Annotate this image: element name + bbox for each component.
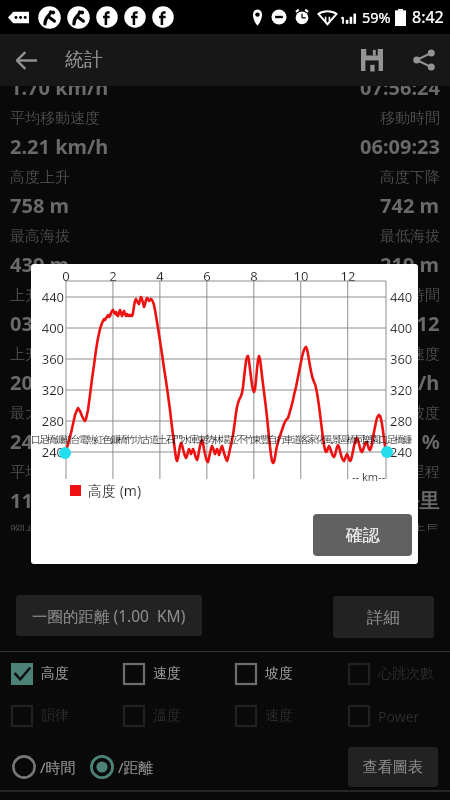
staticText: 03:14:18 — [10, 310, 90, 337]
staticText: 總里程 — [395, 463, 440, 482]
staticText: 240 — [390, 443, 418, 461]
staticText: 最高海拔 — [10, 227, 70, 246]
staticText: 移動時間 — [380, 109, 440, 128]
staticText: 一圈的距離 (1.00 KM) — [32, 605, 186, 626]
staticText: 13.5 公里 — [354, 487, 440, 514]
staticText: 高度 (m) — [88, 481, 142, 500]
staticText: 440 — [390, 288, 418, 306]
staticText: 219 m — [380, 251, 440, 278]
staticText: 204 m/h — [10, 369, 91, 396]
staticText: 06:09:23 — [360, 133, 440, 160]
staticText: -- km-- — [352, 469, 386, 484]
staticText: 1.70 km/h — [10, 86, 109, 101]
staticText: 8 — [243, 267, 265, 285]
staticText: 下降速度 — [380, 345, 440, 364]
staticText: 6 — [196, 267, 218, 285]
staticText: 平均坡度 — [380, 404, 440, 423]
button[interactable]: 高度 — [10, 661, 122, 687]
staticText: 溫度 — [153, 707, 181, 725]
staticText: 口足橋鐮前台電熱紅色鐮橋竹坑古道土石門水庫東勢林場立不竹東豐自行車道客家化風景區… — [31, 433, 418, 446]
staticText: 統計 — [65, 48, 103, 72]
staticText: 詳細 — [367, 607, 400, 628]
button[interactable]: /距離 — [88, 748, 154, 786]
staticText: 320 — [36, 381, 64, 399]
staticText: 320 — [390, 381, 418, 399]
staticText: 236 m/h — [359, 369, 440, 396]
staticText: 439 m — [10, 251, 70, 278]
staticText: 上升速度 — [10, 345, 70, 364]
staticText: 2 — [102, 267, 124, 285]
staticText: 心跳次數 — [378, 665, 434, 683]
staticText: 07:56:24 — [360, 86, 440, 101]
staticText: 400 — [390, 319, 418, 337]
staticText: 上升時間 — [10, 286, 70, 305]
staticText: 280 — [390, 412, 418, 430]
staticText: 平均移動速度 — [10, 109, 100, 128]
staticText: Power — [378, 707, 420, 726]
button[interactable]: Power — [347, 703, 450, 729]
staticText: 腳步數 — [10, 522, 55, 531]
staticText: /距離 — [118, 757, 154, 777]
button[interactable]: 詳細 — [333, 596, 434, 638]
staticText: 0 — [55, 267, 77, 285]
staticText: 坡度 — [265, 665, 293, 683]
staticText: 10 — [290, 267, 312, 285]
button[interactable]: Save — [346, 34, 398, 86]
staticText: 6 % — [405, 428, 440, 455]
staticText: 高度上升 — [10, 168, 70, 187]
staticText: 速度 — [153, 665, 181, 683]
staticText: 查看圖表 — [363, 758, 423, 777]
staticText: 24 % — [10, 428, 57, 455]
staticText: 平均步長 — [380, 522, 440, 531]
staticText: 360 — [36, 350, 64, 368]
button[interactable]: 平均速度 — [0, 86, 450, 575]
staticText: 確認 — [346, 525, 380, 546]
staticText: 360 — [390, 350, 418, 368]
staticText: 440 — [36, 288, 64, 306]
staticText: 280 — [36, 412, 64, 430]
staticText: 2.21 km/h — [10, 133, 109, 160]
button[interactable]: 確認 — [313, 514, 412, 556]
button[interactable]: Share — [398, 34, 450, 86]
button[interactable]: 查看圖表 — [348, 747, 438, 787]
staticText: 04:12 — [388, 310, 440, 337]
staticText: 速度 — [265, 707, 293, 725]
staticText: 平均心率 — [10, 463, 70, 482]
staticText: 最低海拔 — [380, 227, 440, 246]
button[interactable]: 速度 — [234, 703, 347, 729]
button[interactable]: 一圈的距離 (1.00 KM) — [16, 595, 202, 636]
button[interactable]: 坡度 — [234, 661, 347, 687]
staticText: 韻律 — [41, 707, 69, 725]
staticText: 8:42 — [412, 6, 444, 28]
staticText: 4 — [149, 267, 171, 285]
staticText: 742 m — [380, 192, 440, 219]
button[interactable]: 溫度 — [122, 703, 234, 729]
button[interactable]: /時間 — [10, 748, 76, 786]
staticText: 758 m — [10, 192, 70, 219]
staticText: 400 — [36, 319, 64, 337]
staticText: 最大坡度 — [10, 404, 70, 423]
button[interactable]: 速度 — [122, 661, 234, 687]
staticText: 118 bpm — [10, 487, 95, 514]
staticText: 下降時間 — [380, 286, 440, 305]
staticText: 59% — [362, 7, 391, 27]
button[interactable]: 心跳次數 — [347, 661, 450, 687]
staticText: 12 — [337, 267, 359, 285]
staticText: /時間 — [40, 757, 76, 777]
staticText: 高度 — [41, 665, 69, 683]
button[interactable]: Back — [0, 34, 52, 86]
staticText: 240 — [36, 443, 64, 461]
button[interactable]: 韻律 — [10, 703, 122, 729]
staticText: 高度下降 — [380, 168, 440, 187]
